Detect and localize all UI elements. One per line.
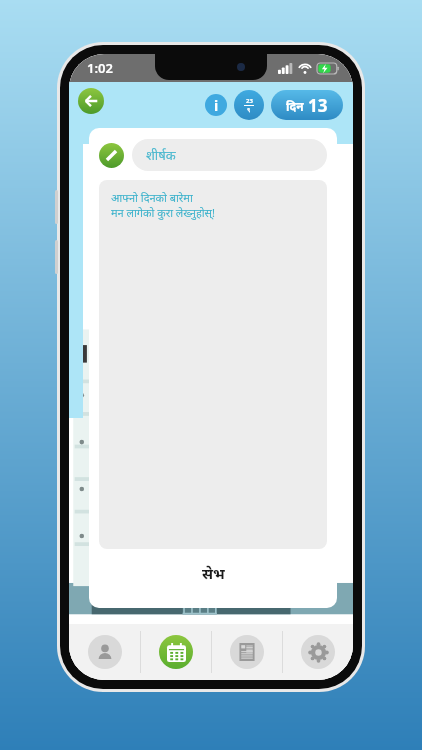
- staticText: सेभ: [202, 563, 225, 583]
- button[interactable]: Settings: [283, 624, 353, 680]
- button[interactable]: Progress: [234, 90, 264, 120]
- staticText: 1:02: [87, 59, 113, 77]
- button[interactable]: Notes: [212, 624, 282, 680]
- button[interactable]: Edit title: [99, 143, 124, 168]
- staticText: ९: [247, 106, 251, 114]
- button[interactable]: Calendar: [141, 624, 211, 680]
- button[interactable]: Info: [205, 94, 227, 116]
- staticText: 13: [308, 94, 328, 117]
- staticText: i: [214, 96, 219, 115]
- staticText: शीर्षक: [146, 146, 176, 164]
- button[interactable]: सेभ: [99, 549, 327, 597]
- button[interactable]: Back: [78, 88, 104, 114]
- button[interactable]: आफ्नो दिनको बारेमा मन लागेको कुरा लेख्नु…: [99, 180, 327, 549]
- staticText: 23: [246, 97, 253, 105]
- button[interactable]: शीर्षक: [132, 139, 327, 171]
- staticText: आफ्नो दिनको बारेमा मन लागेको कुरा लेख्नु…: [111, 190, 216, 220]
- button[interactable]: Profile: [69, 624, 140, 680]
- button[interactable]: दिन: [271, 90, 343, 120]
- staticText: दिन: [286, 98, 304, 114]
